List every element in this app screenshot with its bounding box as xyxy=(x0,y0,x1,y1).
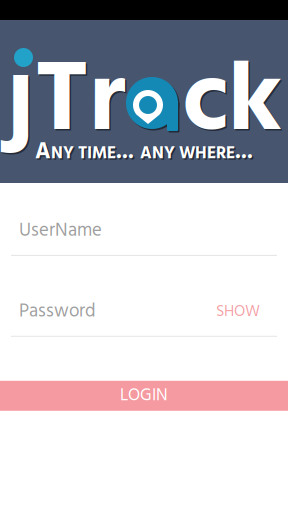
staticText: Any time... any where... xyxy=(35,133,253,170)
staticText: ȷTr xyxy=(6,19,126,178)
staticText: Any time... any where... xyxy=(36,134,254,171)
staticText: SHOW xyxy=(216,299,260,325)
button[interactable]: SHOW xyxy=(216,299,260,325)
staticText: ȷTr xyxy=(7,20,127,180)
staticText: Password xyxy=(19,297,96,327)
staticText: ck xyxy=(183,20,283,180)
button[interactable]: LOGIN xyxy=(0,381,288,411)
staticText: ck xyxy=(182,19,282,178)
staticText: LOGIN xyxy=(120,382,168,410)
staticText: UserName xyxy=(19,216,102,246)
